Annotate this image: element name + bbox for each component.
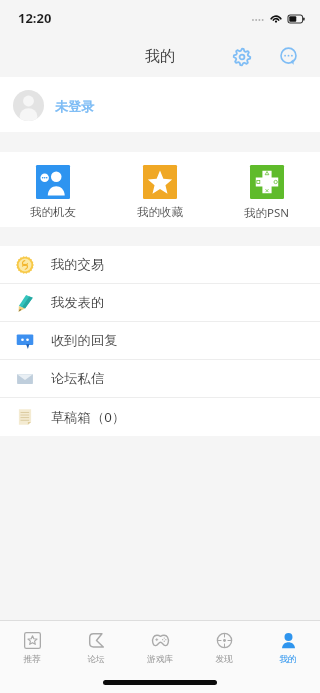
staticText: 未登录 [55,98,94,114]
staticText: 草稿箱（0） [51,408,126,426]
button[interactable]: 我发表的 [0,284,320,322]
button[interactable]: 我的交易 [0,246,320,284]
button[interactable]: 论坛私信 [0,360,320,398]
staticText: 我的收藏 [137,205,183,219]
staticText: 收到的回复 [51,332,118,349]
button[interactable]: 推荐 [0,621,64,693]
button[interactable]: 我的机友 [0,152,106,227]
button[interactable]: 我的 [256,621,320,693]
button[interactable]: 草稿箱（0） [0,398,320,436]
staticText: 12:20 [18,9,52,27]
staticText: 我发表的 [51,294,105,311]
button[interactable]: 游戏库 [128,621,192,693]
button[interactable]: 论坛 [64,621,128,693]
staticText: 我的机友 [30,205,76,219]
button[interactable]: 未登录 [0,77,320,132]
staticText: 发现 [215,654,233,665]
button[interactable]: 收到的回复 [0,322,320,360]
button[interactable]: 我的PSN [213,152,320,227]
staticText: 论坛 [87,654,105,665]
staticText: 我的 [145,47,175,66]
button[interactable]: Messages [273,41,304,72]
staticText: 推荐 [23,654,41,665]
staticText: 我的交易 [51,256,105,273]
button[interactable]: Settings [226,41,257,72]
staticText: 我的PSN [244,205,290,221]
staticText: 我的 [279,654,297,665]
staticText: 游戏库 [147,654,173,665]
staticText: 论坛私信 [51,370,105,387]
button[interactable]: 发现 [192,621,256,693]
button[interactable]: 我的收藏 [106,152,213,227]
